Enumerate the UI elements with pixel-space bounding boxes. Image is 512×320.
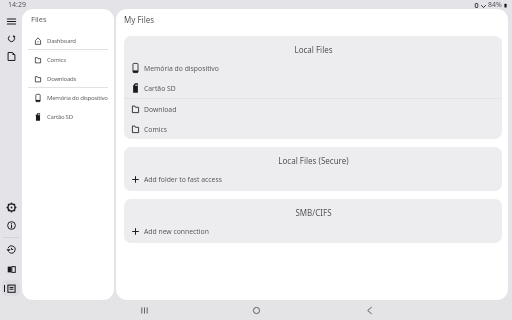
staticText: Add folder to fast access	[144, 175, 222, 184]
button[interactable]: Collections	[2, 279, 20, 297]
button[interactable]: Refresh	[3, 30, 19, 46]
staticText: Cartão SD	[144, 84, 176, 93]
button[interactable]: Memória do dispositivo	[124, 58, 502, 78]
button[interactable]: Dashboard	[22, 31, 114, 50]
button[interactable]: Settings	[3, 199, 19, 215]
staticText: Downloads	[47, 75, 77, 83]
staticText: Comics	[144, 125, 168, 134]
staticText: Memória do dispositivo	[144, 64, 219, 73]
button[interactable]: Add folder to fast access	[124, 169, 502, 189]
staticText: 84%	[488, 0, 502, 10]
staticText: Dashboard	[47, 37, 76, 45]
button[interactable]: Downloads	[22, 69, 114, 88]
button[interactable]: History	[3, 241, 19, 257]
button[interactable]: Documents	[3, 48, 19, 64]
staticText: Add new connection	[144, 227, 209, 236]
button[interactable]: About	[3, 217, 19, 233]
button[interactable]: Comics	[22, 50, 114, 69]
button[interactable]: Cartão SD	[22, 107, 114, 126]
staticText: Local Files	[294, 44, 333, 55]
staticText: Files	[31, 14, 47, 24]
staticText: Download	[144, 105, 177, 114]
staticText: Local Files (Secure)	[278, 155, 349, 166]
button[interactable]: Recent apps	[136, 302, 152, 318]
button[interactable]: Cartão SD	[124, 78, 502, 98]
button[interactable]: Menu	[3, 13, 19, 29]
button[interactable]: Comics	[124, 119, 502, 139]
staticText: SMB/CIFS	[295, 207, 332, 218]
staticText: My Files	[124, 14, 155, 25]
button[interactable]: Add new connection	[124, 221, 502, 241]
button[interactable]: Home	[248, 302, 264, 318]
button[interactable]: Back	[361, 302, 377, 318]
staticText: 14:29	[8, 0, 26, 10]
staticText: Cartão SD	[47, 113, 73, 121]
button[interactable]: Memória do dispositivo	[22, 88, 114, 107]
button[interactable]: Download	[124, 99, 502, 119]
staticText: Memória do dispositivo	[47, 94, 108, 102]
button[interactable]: Library	[3, 261, 19, 277]
staticText: Comics	[47, 56, 66, 64]
